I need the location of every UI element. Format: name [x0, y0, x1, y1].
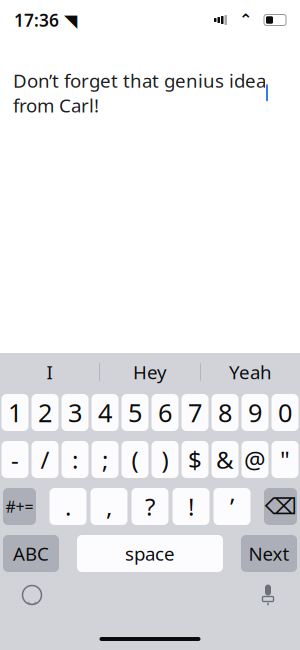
- staticText: &: [216, 444, 234, 475]
- button[interactable]: Emoji: [12, 578, 52, 612]
- button[interactable]: 1: [1, 394, 28, 431]
- button[interactable]: /: [31, 441, 58, 478]
- staticText: 0: [278, 396, 292, 429]
- staticText: 6: [158, 396, 172, 429]
- button[interactable]: -: [1, 441, 28, 478]
- staticText: space: [125, 541, 175, 566]
- button[interactable]: (: [121, 441, 148, 478]
- staticText: Don’t forget that genius idea from Carl!: [13, 68, 266, 118]
- button[interactable]: #+=: [3, 488, 36, 525]
- staticText: ;: [102, 444, 108, 475]
- staticText: !: [188, 491, 194, 522]
- staticText: Yeah: [229, 360, 272, 384]
- staticText: 8: [218, 396, 232, 429]
- button[interactable]: @: [241, 441, 268, 478]
- button[interactable]: :: [61, 441, 88, 478]
- staticText: .: [65, 491, 71, 522]
- button[interactable]: I: [0, 353, 99, 391]
- staticText: ’: [230, 491, 234, 522]
- button[interactable]: ;: [91, 441, 118, 478]
- staticText: Next: [248, 541, 289, 566]
- button[interactable]: $: [181, 441, 208, 478]
- staticText: (: [131, 444, 138, 475]
- button[interactable]: ?: [131, 488, 168, 525]
- staticText: $: [188, 444, 202, 475]
- button[interactable]: !: [172, 488, 209, 525]
- button[interactable]: Delete: [264, 488, 297, 525]
- button[interactable]: 3: [61, 394, 88, 431]
- button[interactable]: 6: [151, 394, 178, 431]
- staticText: ": [280, 444, 290, 475]
- staticText: 4: [98, 396, 112, 429]
- button[interactable]: Hey: [100, 353, 200, 391]
- staticText: 7: [188, 396, 202, 429]
- button[interactable]: ABC: [3, 535, 59, 572]
- staticText: 17:36 ◥: [14, 8, 77, 31]
- staticText: 2: [38, 396, 52, 429]
- staticText: :: [72, 444, 78, 475]
- staticText: 9: [248, 396, 262, 429]
- button[interactable]: .: [49, 488, 86, 525]
- staticText: /: [40, 444, 49, 475]
- staticText: ⌫: [264, 494, 296, 519]
- staticText: -: [11, 444, 19, 475]
- button[interactable]: 9: [241, 394, 268, 431]
- button[interactable]: space: [77, 535, 223, 572]
- staticText: Hey: [133, 360, 167, 384]
- button[interactable]: 4: [91, 394, 118, 431]
- staticText: ,: [106, 491, 112, 522]
- staticText: ?: [145, 491, 155, 522]
- button[interactable]: 5: [121, 394, 148, 431]
- staticText: 1: [8, 396, 22, 429]
- button[interactable]: Dictation: [248, 578, 288, 612]
- button[interactable]: ,: [90, 488, 127, 525]
- staticText: #+=: [5, 496, 33, 517]
- button[interactable]: 0: [271, 394, 298, 431]
- staticText: ): [161, 444, 168, 475]
- staticText: 3: [68, 396, 82, 429]
- staticText: ABC: [13, 541, 49, 566]
- staticText: I: [46, 360, 52, 384]
- staticText: @: [244, 444, 266, 475]
- button[interactable]: Next: [241, 535, 297, 572]
- button[interactable]: ’: [213, 488, 250, 525]
- button[interactable]: 8: [211, 394, 238, 431]
- button[interactable]: 2: [31, 394, 58, 431]
- button[interactable]: 7: [181, 394, 208, 431]
- button[interactable]: ": [271, 441, 298, 478]
- button[interactable]: &: [211, 441, 238, 478]
- staticText: 5: [128, 396, 142, 429]
- button[interactable]: Yeah: [201, 353, 300, 391]
- staticText: ‿: [27, 585, 36, 605]
- button[interactable]: ): [151, 441, 178, 478]
- staticText: ⌃: [227, 11, 264, 29]
